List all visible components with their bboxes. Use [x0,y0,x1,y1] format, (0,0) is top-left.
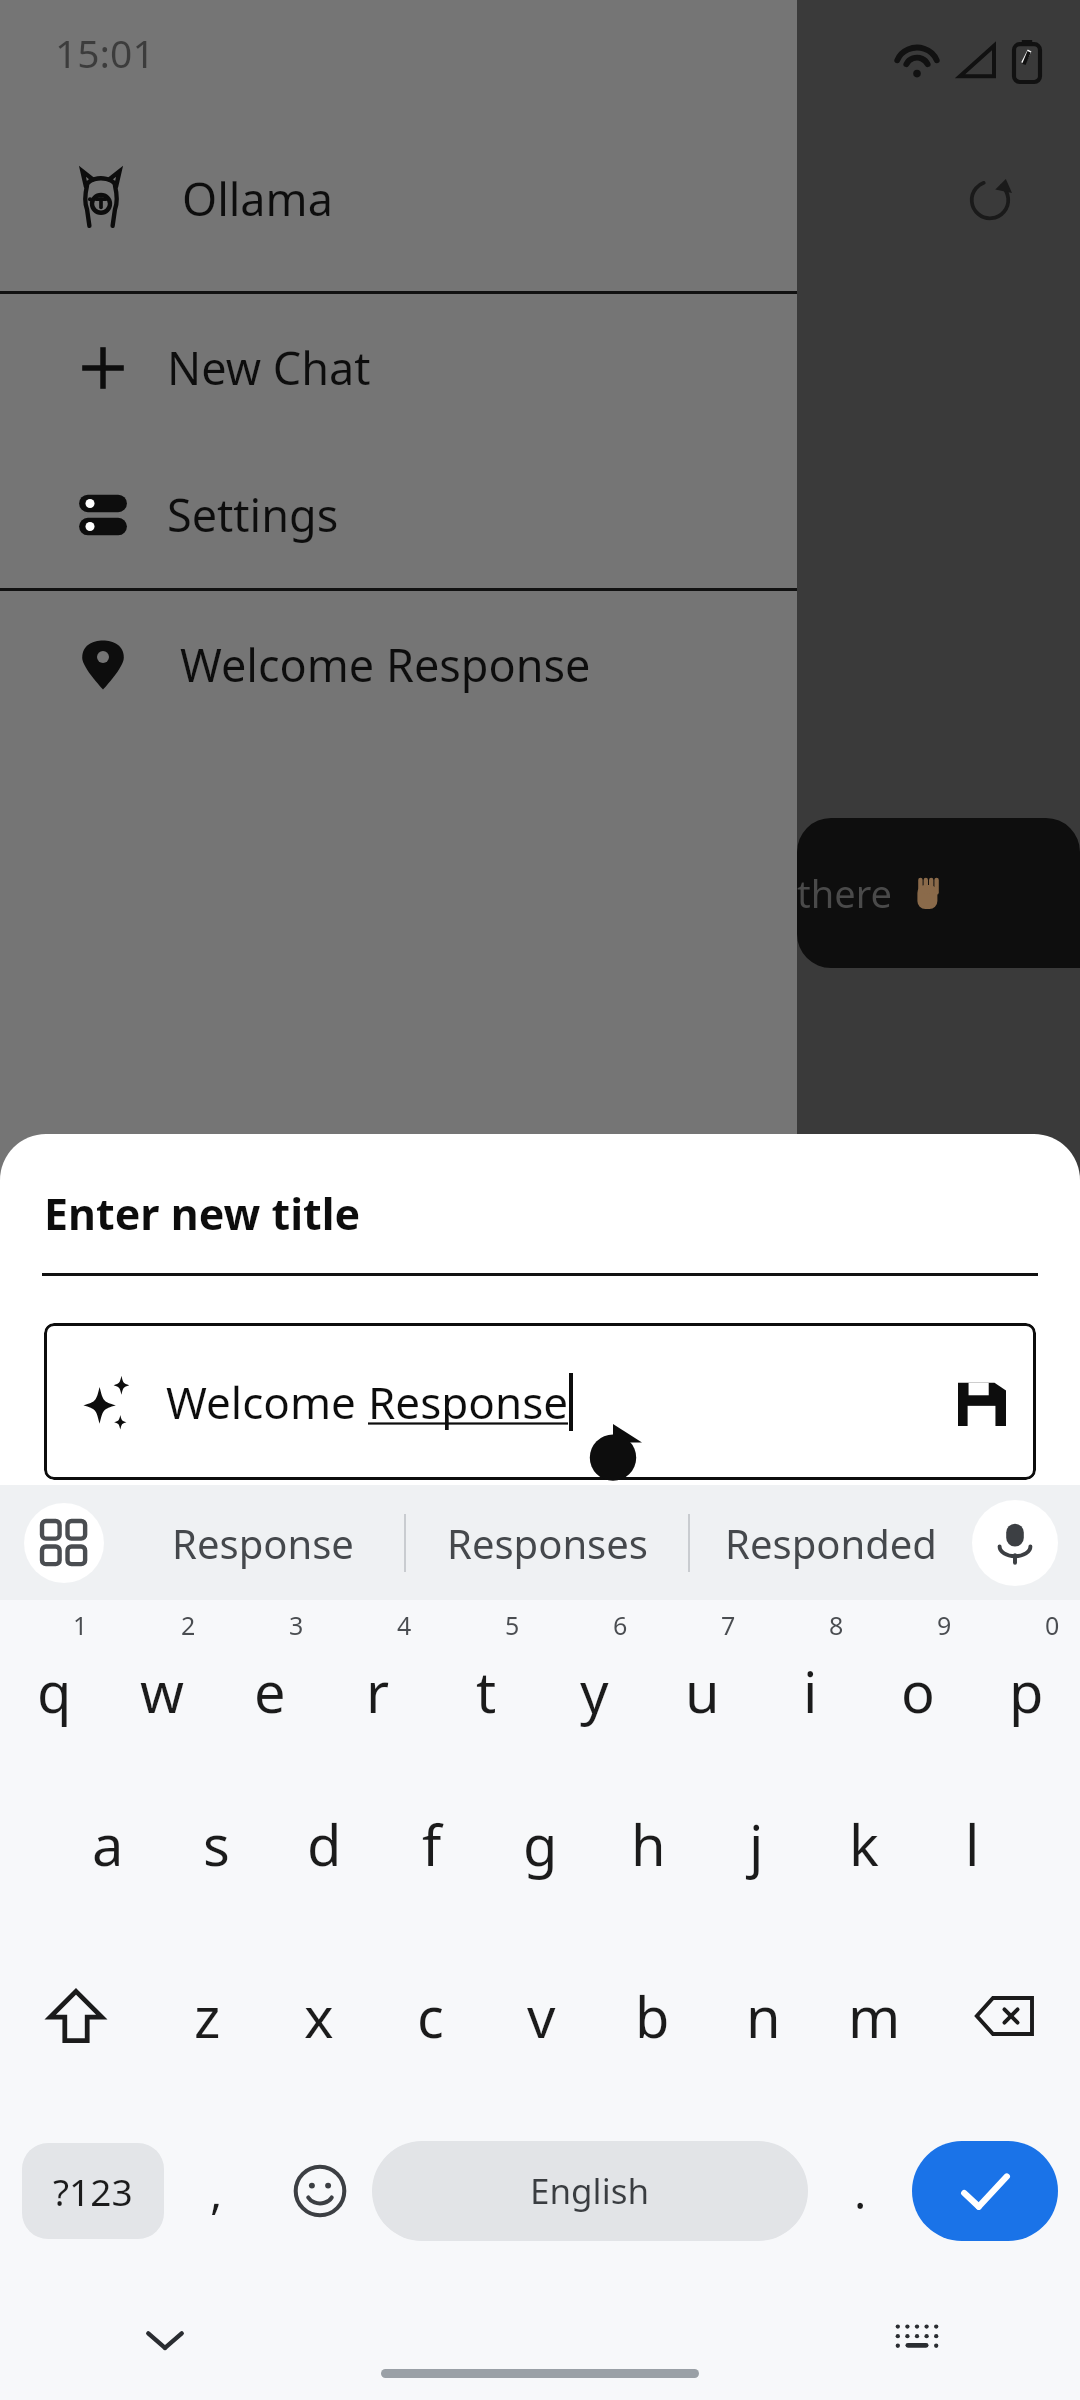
staticText: Enter new title [44,1184,361,1243]
staticText: g [523,1806,558,1882]
button[interactable]: f [378,1758,486,1930]
button[interactable]: Hide keyboard [130,2305,200,2375]
button[interactable]: 1 [0,1600,108,1758]
staticText: w [140,1653,185,1729]
staticText: , [210,2160,223,2223]
staticText: New Chat [167,337,371,398]
staticText: u [685,1653,720,1729]
button[interactable]: 8 [756,1600,864,1758]
button[interactable]: Welcome [44,1323,1036,1480]
staticText: Response [172,1516,354,1570]
staticText: d [307,1806,342,1882]
button[interactable]: z [151,1930,263,2102]
button[interactable]: Voice input [972,1500,1058,1586]
button[interactable]: Save [936,1356,1028,1448]
staticText: Responded [725,1516,937,1570]
staticText: 0 [1045,1608,1060,1642]
button[interactable]: l [918,1758,1026,1930]
staticText: 1 [73,1608,88,1642]
staticText: English [530,2167,650,2215]
staticText: b [635,1978,670,2054]
staticText: k [849,1806,879,1882]
button[interactable]: English [372,2141,808,2241]
button[interactable]: Welcome Response [0,591,797,738]
staticText: c [417,1978,444,2054]
button[interactable]: k [810,1758,918,1930]
button[interactable]: Settings [0,441,797,588]
staticText: z [194,1978,221,2054]
staticText: . [854,2160,867,2223]
button[interactable]: 3 [216,1600,324,1758]
staticText: 7 [721,1608,736,1642]
button[interactable]: v [486,1930,597,2102]
staticText: 5 [505,1608,520,1642]
staticText: a [92,1806,124,1882]
button[interactable]: Switch keyboard [882,2305,952,2375]
staticText: m [848,1978,901,2054]
staticText: x [304,1978,334,2054]
button[interactable]: Response [122,1485,404,1600]
staticText: 6 [613,1608,628,1642]
button[interactable]: d [270,1758,378,1930]
button[interactable]: g [486,1758,594,1930]
staticText: i [803,1653,818,1729]
button[interactable]: 2 [108,1600,216,1758]
staticText: ?123 [53,2166,133,2216]
staticText: there [797,867,893,919]
staticText: h [631,1806,666,1882]
staticText: Response [368,1372,569,1432]
button[interactable]: Backspace [930,1930,1080,2102]
button[interactable]: Responded [690,1485,972,1600]
button[interactable]: h [594,1758,702,1930]
staticText: e [254,1653,286,1729]
staticText: j [749,1806,764,1882]
staticText: f [422,1806,442,1882]
button[interactable]: 6 [540,1600,648,1758]
staticText: Welcome Response [180,634,591,695]
button[interactable]: Shift [0,1930,151,2102]
button[interactable]: 9 [864,1600,972,1758]
button[interactable]: Toolbar [24,1503,104,1583]
staticText: Responses [447,1516,648,1570]
staticText: y [580,1653,609,1729]
staticText: 15:01 [55,26,155,79]
button[interactable]: n [708,1930,819,2102]
button[interactable]: 0 [972,1600,1080,1758]
staticText: Ollama [182,168,333,229]
button[interactable]: m [819,1930,930,2102]
button[interactable]: 5 [432,1600,540,1758]
button[interactable]: s [162,1758,270,1930]
staticText: n [746,1978,781,2054]
button[interactable]: ?123 [22,2143,164,2239]
button[interactable]: , [164,2102,268,2280]
staticText: 4 [397,1608,412,1642]
button[interactable]: . [808,2102,912,2280]
button[interactable]: j [702,1758,810,1930]
button[interactable]: Emoji [268,2102,372,2280]
staticText: l [965,1806,980,1882]
button[interactable]: 7 [648,1600,756,1758]
button[interactable]: Ollama [0,105,797,291]
staticText: q [37,1653,72,1729]
button[interactable]: c [375,1930,486,2102]
button[interactable]: a [54,1758,162,1930]
staticText: t [476,1653,497,1729]
button[interactable]: b [597,1930,708,2102]
staticText: r [366,1653,390,1729]
staticText: v [527,1978,556,2054]
button[interactable]: 4 [324,1600,432,1758]
button[interactable]: Enter [912,2141,1058,2241]
staticText: 9 [937,1608,952,1642]
staticText: Welcome [166,1372,368,1432]
button[interactable]: Refresh [955,165,1025,235]
staticText: 8 [829,1608,844,1642]
staticText: p [1009,1653,1044,1729]
staticText: 2 [181,1608,196,1642]
staticText: 3 [289,1608,304,1642]
button[interactable]: New Chat [0,294,797,441]
staticText: o [901,1653,935,1729]
button[interactable]: Responses [406,1485,688,1600]
button[interactable]: x [263,1930,375,2102]
staticText: Settings [167,484,339,545]
staticText: s [203,1806,230,1882]
